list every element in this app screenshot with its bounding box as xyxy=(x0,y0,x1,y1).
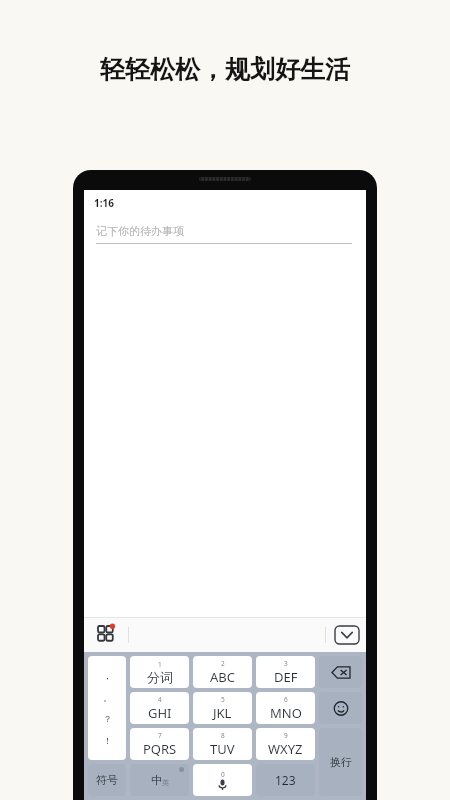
staticText: 9 xyxy=(284,731,288,740)
button[interactable]: 7 xyxy=(130,728,189,760)
button[interactable]: 5 xyxy=(193,692,252,724)
staticText: PQRS xyxy=(143,740,177,758)
staticText: MNO xyxy=(270,704,302,722)
button[interactable]: Punctuation xyxy=(88,656,126,760)
staticText: TUV xyxy=(210,740,235,758)
staticText: 0 xyxy=(221,770,225,779)
staticText: 6 xyxy=(284,695,288,704)
staticText: 分词 xyxy=(147,669,173,685)
button[interactable]: 8 xyxy=(193,728,252,760)
staticText: 4 xyxy=(158,695,162,704)
staticText: DEF xyxy=(274,668,298,686)
staticText: 1:16 xyxy=(94,196,114,210)
staticText: 记下你的待办事项 xyxy=(96,224,184,238)
staticText: 符号 xyxy=(96,773,118,787)
staticText: 轻轻松松，规划好生活 xyxy=(100,54,350,85)
staticText: 1 xyxy=(158,660,162,669)
button[interactable]: 1 xyxy=(130,656,189,688)
staticText: ， xyxy=(103,670,112,681)
button[interactable]: More tools xyxy=(92,620,122,650)
staticText: 英 xyxy=(162,778,169,787)
staticText: JKL xyxy=(213,704,232,722)
button[interactable]: Space / voice input xyxy=(193,764,252,796)
button[interactable]: Hide keyboard xyxy=(335,626,359,644)
button[interactable]: 记下你的待办事项 xyxy=(96,224,352,244)
button[interactable]: Emoji xyxy=(319,692,362,724)
staticText: 3 xyxy=(284,659,288,668)
staticText: 。 xyxy=(103,692,112,703)
button[interactable]: Backspace xyxy=(319,656,362,688)
staticText: 5 xyxy=(221,695,225,704)
button[interactable]: 换行 xyxy=(319,728,362,796)
button[interactable]: 123 xyxy=(256,764,315,796)
button[interactable]: 6 xyxy=(256,692,315,724)
button[interactable]: 符号 xyxy=(88,764,126,796)
staticText: 7 xyxy=(158,731,162,740)
staticText: 8 xyxy=(221,731,225,740)
button[interactable]: 4 xyxy=(130,692,189,724)
staticText: GHI xyxy=(148,704,172,722)
button[interactable]: 3 xyxy=(256,656,315,688)
staticText: 中 xyxy=(151,773,162,787)
staticText: ABC xyxy=(210,668,235,686)
button[interactable]: 2 xyxy=(193,656,252,688)
button[interactable]: 9 xyxy=(256,728,315,760)
staticText: 换行 xyxy=(330,755,352,769)
button[interactable]: 中 xyxy=(130,764,189,796)
staticText: 123 xyxy=(275,772,296,788)
staticText: 2 xyxy=(221,659,225,668)
staticText: ！ xyxy=(103,735,112,746)
staticText: WXYZ xyxy=(268,740,303,758)
staticText: ？ xyxy=(103,713,112,724)
